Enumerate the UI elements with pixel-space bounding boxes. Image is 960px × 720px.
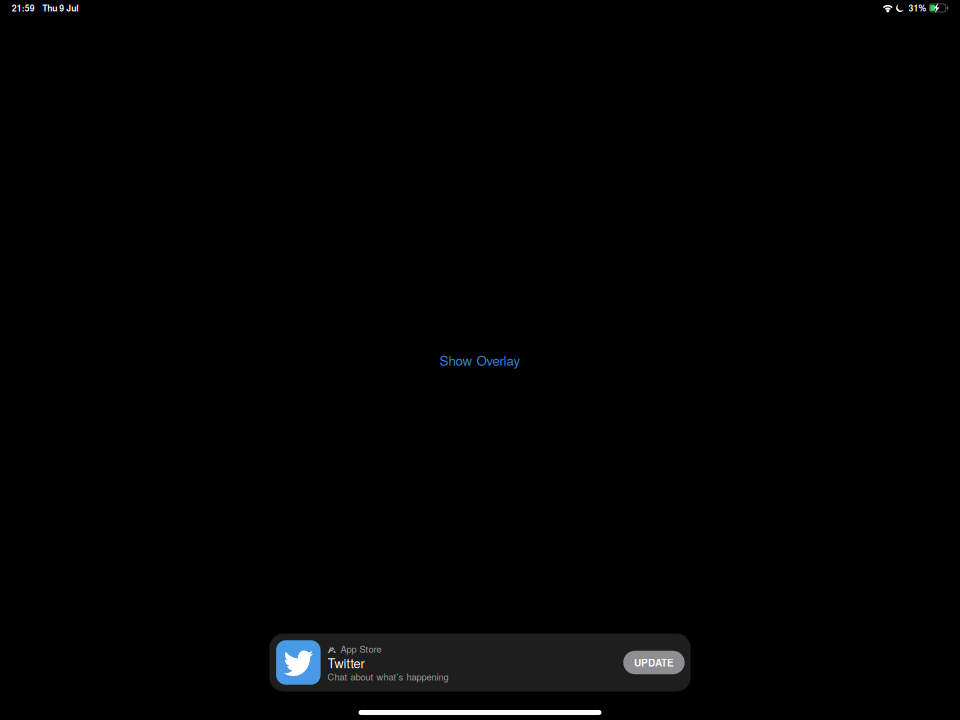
button[interactable]: Show Overlay: [439, 352, 520, 368]
staticText: Chat about what's happening: [328, 670, 449, 683]
staticText: Show Overlay: [439, 350, 520, 370]
button[interactable]: App Store: [269, 633, 690, 691]
staticText: Twitter: [328, 654, 365, 672]
staticText: Thu 9 Jul: [42, 2, 78, 14]
staticText: App Store: [341, 642, 382, 655]
staticText: 31%: [909, 2, 927, 14]
staticText: UPDATE: [634, 655, 674, 670]
staticText: 21:59: [12, 2, 35, 14]
button[interactable]: UPDATE: [623, 651, 685, 674]
